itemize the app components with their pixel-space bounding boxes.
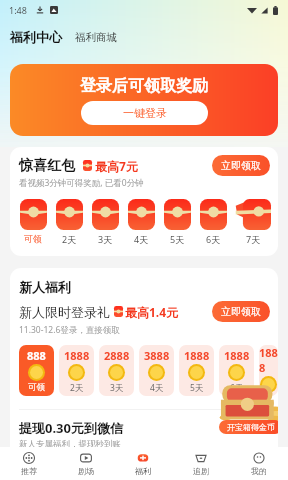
button[interactable]: 追剧 bbox=[172, 447, 230, 476]
button[interactable]: 1888 bbox=[219, 345, 254, 396]
other: 我的 bbox=[253, 452, 265, 464]
staticText: 福利 bbox=[135, 466, 151, 476]
staticText: 5天 bbox=[170, 233, 185, 245]
button[interactable]: 4天 bbox=[127, 199, 155, 245]
staticText: 6天 bbox=[206, 233, 221, 245]
staticText: 福利中心 bbox=[10, 29, 62, 45]
button[interactable]: 2888 bbox=[99, 345, 134, 396]
staticText: 最高1.4元 bbox=[125, 304, 179, 320]
staticText: 7天 bbox=[262, 394, 276, 396]
staticText: 一键登录 bbox=[123, 106, 167, 120]
staticText: 我的 bbox=[251, 466, 267, 476]
staticText: 4天 bbox=[134, 233, 149, 245]
staticText: 开宝箱得金币 bbox=[227, 422, 275, 432]
staticText: 4天 bbox=[150, 382, 164, 394]
staticText: 惊喜红包 bbox=[19, 157, 75, 175]
button[interactable]: 888 bbox=[19, 345, 54, 396]
button[interactable]: 立即领取 bbox=[212, 155, 270, 176]
staticText: 最高7元 bbox=[95, 158, 138, 174]
button[interactable]: 开宝箱得金币 bbox=[217, 383, 278, 435]
staticText: 1888 bbox=[184, 348, 210, 363]
staticText: 1888 bbox=[224, 348, 250, 363]
staticText: 1:48 bbox=[9, 4, 27, 16]
staticText: 提现0.30元到微信 bbox=[19, 419, 123, 437]
staticText: 6天 bbox=[230, 382, 244, 394]
staticText: 立即领取 bbox=[221, 305, 261, 318]
button[interactable]: 福利 bbox=[114, 447, 172, 476]
button[interactable]: 3天 bbox=[91, 199, 119, 245]
button[interactable]: 6天 bbox=[199, 199, 227, 245]
button[interactable]: 福利中心 bbox=[10, 29, 62, 45]
staticText: 看视频3分钟可得奖励, 已看0分钟 bbox=[19, 177, 144, 189]
staticText: 2天 bbox=[70, 382, 84, 394]
button[interactable]: 立即领取 bbox=[212, 301, 270, 322]
staticText: 追剧 bbox=[193, 466, 209, 476]
staticText: 登录后可领取奖励 bbox=[80, 76, 208, 96]
staticText: 1888 bbox=[64, 348, 90, 363]
staticText: 新人专属福利，提现秒到账 bbox=[19, 439, 121, 450]
staticText: 1888 bbox=[259, 345, 278, 375]
other: 福利 bbox=[137, 452, 149, 464]
staticText: 可领 bbox=[28, 382, 45, 393]
staticText: 3天 bbox=[110, 382, 124, 394]
staticText: 推荐 bbox=[21, 466, 37, 476]
button[interactable]: 1888 bbox=[179, 345, 214, 396]
button[interactable]: 可领 bbox=[19, 199, 47, 244]
staticText: 新人福利 bbox=[19, 279, 71, 295]
staticText: 新人限时登录礼 bbox=[19, 304, 110, 320]
other: 推荐 bbox=[23, 452, 35, 464]
staticText: 福利商城 bbox=[75, 31, 117, 44]
button[interactable]: 2天 bbox=[55, 199, 83, 245]
staticText: 3天 bbox=[98, 233, 113, 245]
staticText: 5天 bbox=[190, 382, 204, 394]
button[interactable]: 登录后可领取奖励 bbox=[10, 64, 278, 136]
staticText: 11.30-12.6登录，直接领取 bbox=[19, 324, 120, 336]
other: 剧场 bbox=[80, 452, 92, 464]
staticText: 可领 bbox=[24, 233, 42, 244]
button[interactable]: 5天 bbox=[163, 199, 191, 245]
button[interactable]: 福利商城 bbox=[75, 31, 117, 45]
button[interactable]: 1888 bbox=[259, 345, 278, 396]
button[interactable]: 我的 bbox=[230, 447, 288, 476]
staticText: 2888 bbox=[104, 348, 130, 363]
other: 追剧 bbox=[195, 452, 207, 464]
button[interactable]: 剧场 bbox=[57, 447, 114, 476]
button[interactable]: 一键登录 bbox=[81, 101, 208, 125]
button[interactable]: 7天 bbox=[235, 199, 271, 245]
staticText: 立即领取 bbox=[221, 159, 261, 172]
staticText: 888 bbox=[27, 348, 46, 363]
button[interactable]: 推荐 bbox=[0, 447, 57, 476]
staticText: 2天 bbox=[62, 233, 77, 245]
button[interactable]: 1888 bbox=[59, 345, 94, 396]
staticText: 3888 bbox=[144, 348, 170, 363]
staticText: 剧场 bbox=[78, 466, 94, 476]
button[interactable]: 3888 bbox=[139, 345, 174, 396]
staticText: 7天 bbox=[246, 233, 261, 245]
